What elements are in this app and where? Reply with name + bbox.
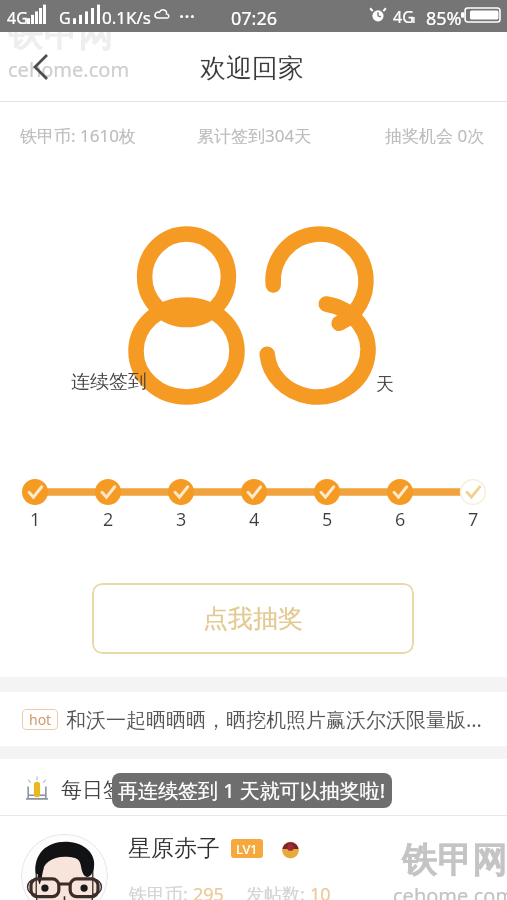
staticText: 4G xyxy=(7,7,28,29)
staticText: 铁甲币: xyxy=(129,882,193,900)
staticText: 07:26 xyxy=(231,6,278,31)
staticText: 铁甲网 xyxy=(402,838,507,882)
staticText: 欢迎回家 xyxy=(200,52,304,85)
button[interactable]: 每日签到 xyxy=(0,759,507,815)
staticText: hot xyxy=(29,710,52,729)
button[interactable]: 星原赤子 xyxy=(0,816,507,900)
staticText: 累计签到304天 xyxy=(197,124,312,147)
staticText: 点我抽奖 xyxy=(203,603,303,634)
staticText: 4 xyxy=(249,507,260,532)
staticText: 铁甲网 xyxy=(8,12,113,56)
staticText: 铁甲币: 1610枚 xyxy=(20,124,136,147)
staticText: 和沃一起晒晒晒，晒挖机照片赢沃尔沃限量版… xyxy=(66,706,482,733)
staticText: LV1 xyxy=(236,840,258,858)
staticText: 3 xyxy=(176,507,187,532)
staticText: G xyxy=(59,7,71,29)
staticText: 7 xyxy=(468,507,479,532)
staticText: 295 xyxy=(193,882,224,900)
staticText: 0.1K/s xyxy=(102,6,151,29)
button[interactable]: hot xyxy=(0,692,507,746)
staticText: 再连续签到 1 天就可以抽奖啦! xyxy=(118,777,386,804)
button[interactable]: Back xyxy=(20,46,62,88)
button[interactable]: 点我抽奖 xyxy=(92,583,414,654)
staticText: 4G xyxy=(393,6,414,28)
staticText: cehome.com xyxy=(393,882,507,900)
staticText: 2 xyxy=(103,507,114,532)
staticText: 星原赤子 xyxy=(128,834,220,863)
staticText: cehome.com xyxy=(8,56,130,83)
staticText: 85% xyxy=(426,6,462,31)
staticText: 天 xyxy=(376,373,394,396)
staticText: 5 xyxy=(322,507,333,532)
staticText: ₁ xyxy=(411,6,416,25)
staticText: 1 xyxy=(30,507,41,532)
staticText: 每日签到 xyxy=(61,777,145,803)
staticText: 10 xyxy=(310,882,331,900)
staticText: 抽奖机会 0次 xyxy=(385,124,485,147)
staticText: 6 xyxy=(395,507,406,532)
staticText: 发帖数: xyxy=(246,882,310,900)
staticText: 连续签到 xyxy=(71,370,147,394)
